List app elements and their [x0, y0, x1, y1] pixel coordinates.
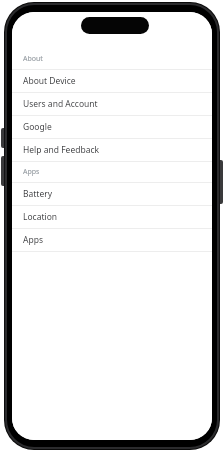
staticText: Location [23, 211, 58, 223]
staticText: Battery [23, 188, 53, 200]
button[interactable]: Location [12, 206, 212, 228]
staticText: About Device [23, 75, 76, 87]
staticText: Users and Account [23, 98, 98, 110]
button[interactable]: About Device [12, 70, 212, 92]
staticText: Help and Feedback [23, 144, 100, 156]
staticText: Apps [23, 167, 40, 177]
button[interactable]: Battery [12, 183, 212, 205]
staticText: Google [23, 121, 52, 133]
button[interactable]: Users and Account [12, 93, 212, 115]
button[interactable]: Google [12, 116, 212, 138]
button[interactable]: Help and Feedback [12, 139, 212, 161]
button[interactable]: Apps [12, 229, 212, 251]
staticText: Apps [23, 234, 43, 246]
staticText: About [23, 54, 43, 64]
